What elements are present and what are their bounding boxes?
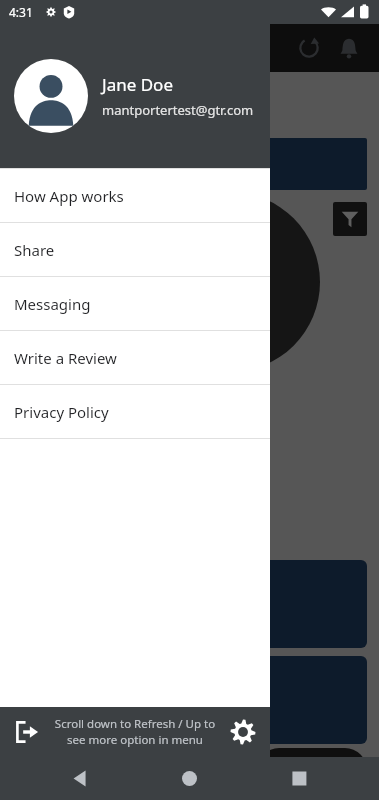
staticText: How App works: [14, 186, 124, 206]
staticText: 4:31: [9, 4, 33, 20]
button[interactable]: Settings: [224, 713, 262, 751]
staticText: mantportertest@gtr.com: [102, 101, 254, 119]
button[interactable]: Write a Review: [0, 331, 270, 384]
button[interactable]: Our Website: [12, 656, 367, 744]
button[interactable]: Total Rewards Paid: [12, 138, 367, 190]
button[interactable]: Privacy Policy: [0, 385, 270, 438]
staticText: Messaging: [14, 294, 91, 314]
button[interactable]: Messaging: [0, 277, 270, 330]
button[interactable]: How App works: [0, 169, 270, 222]
staticText: Privacy Policy: [14, 402, 109, 422]
staticText: Share: [14, 240, 55, 260]
button[interactable]: Log out: [8, 713, 46, 751]
staticText: Our Website: [152, 709, 228, 727]
button[interactable]: Share: [0, 223, 270, 276]
staticText: Write a Review: [14, 348, 117, 368]
button[interactable]: Refresh: [289, 28, 329, 68]
staticText: Jane Doe: [102, 73, 173, 96]
button[interactable]: Contact us: [257, 748, 367, 792]
button[interactable]: Notifications: [329, 28, 369, 68]
button[interactable]: Filter: [333, 202, 367, 236]
staticText: $0.00: [26, 162, 70, 185]
staticText: Scroll down to Refresh / Up to see more …: [50, 716, 220, 748]
button[interactable]: My Wallet: [12, 560, 367, 648]
